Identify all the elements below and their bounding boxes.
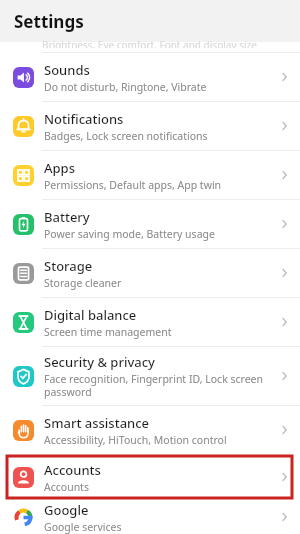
staticText: Settings [14,10,84,33]
staticText: Screen time management [44,325,172,339]
button[interactable]: Accounts [0,454,300,500]
staticText: Storage cleaner [44,276,122,290]
staticText: Sounds [44,61,90,79]
staticText: Security & privacy [44,353,155,371]
button[interactable]: Digital balance [0,298,300,346]
staticText: Brightness, Eye comfort, Font and displa… [42,38,257,48]
staticText: Apps [44,159,75,177]
button[interactable]: Storage [0,249,300,297]
button[interactable]: Apps [0,151,300,199]
staticText: Do not disturb, Ringtone, Vibrate [44,80,207,94]
button[interactable]: Google [0,500,300,534]
staticText: Permissions, Default apps, App twin [44,178,222,192]
staticText: Accounts [44,461,101,479]
staticText: Google [44,501,89,519]
staticText: Notifications [44,110,124,128]
staticText: Digital balance [44,306,137,324]
staticText: Storage [44,257,93,275]
staticText: Accessibility, HiTouch, Motion control [44,433,227,447]
staticText: Badges, Lock screen notifications [44,129,208,143]
staticText: Power saving mode, Battery usage [44,227,215,241]
button[interactable]: Sounds [0,53,300,101]
button[interactable]: Smart assistance [0,406,300,454]
button[interactable]: Notifications [0,102,300,150]
staticText: Face recognition, Fingerprint ID, Lock s… [44,372,272,399]
button[interactable]: Security & privacy [0,347,300,405]
staticText: Battery [44,208,90,226]
staticText: Accounts [44,480,89,494]
staticText: Smart assistance [44,414,150,432]
staticText: Google services [44,520,122,534]
button[interactable]: Battery [0,200,300,248]
